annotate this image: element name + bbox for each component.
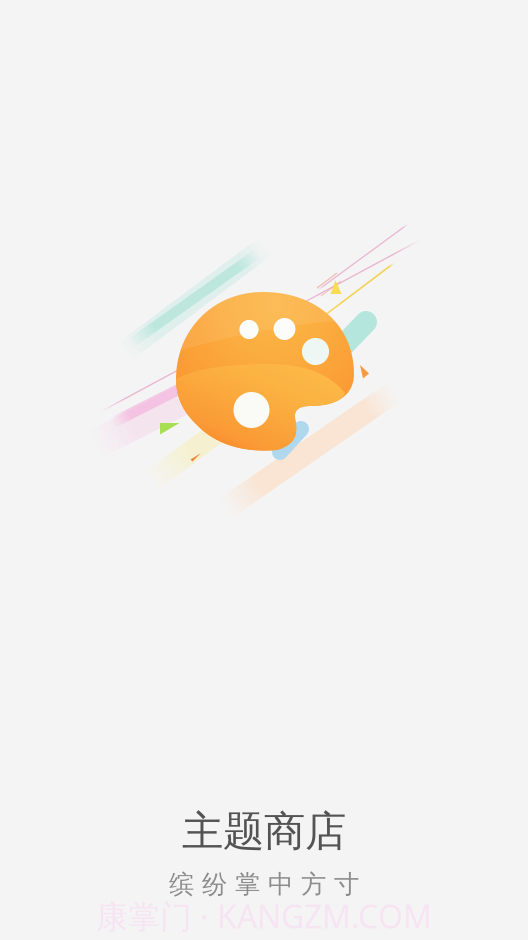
- staticText: 主题商店: [182, 806, 346, 857]
- staticText: 缤 纷 掌 中 方 寸: [169, 869, 359, 900]
- staticText: 康掌门 · KANGZM.COM: [96, 895, 432, 937]
